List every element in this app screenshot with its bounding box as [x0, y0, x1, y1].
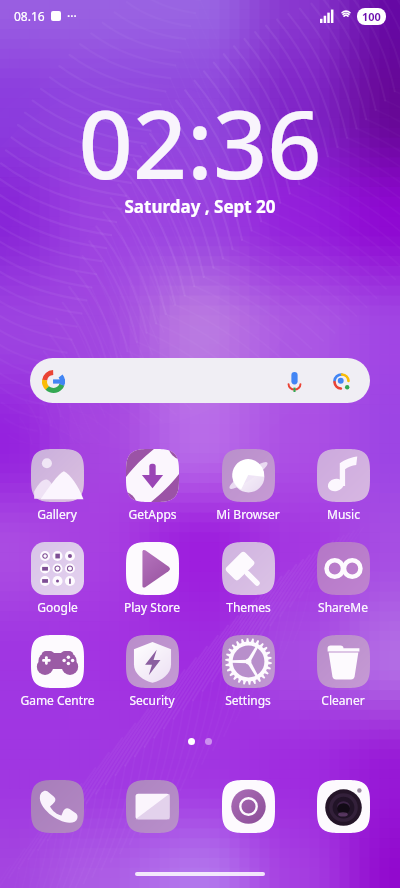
button[interactable]: Cleaner — [298, 635, 388, 708]
button[interactable]: Gallery — [12, 449, 102, 522]
button[interactable]: Phone — [12, 780, 102, 833]
staticText: 100 — [362, 9, 381, 24]
staticText: Cleaner — [321, 692, 365, 708]
staticText: Settings — [225, 692, 271, 708]
button[interactable]: Settings — [203, 635, 293, 708]
staticText: Gallery — [37, 506, 77, 522]
button[interactable]: Security — [107, 635, 197, 708]
button[interactable] — [30, 358, 370, 403]
staticText: 02:36 — [0, 77, 400, 206]
button[interactable]: Messages — [107, 780, 197, 833]
staticText: 08.16 — [14, 8, 45, 24]
staticText: Security — [129, 692, 175, 708]
staticText: Game Centre — [20, 692, 95, 708]
staticText: Saturday , Sept 20 — [0, 195, 400, 218]
button[interactable]: ShareMe — [298, 542, 388, 615]
button[interactable]: Chrome — [203, 780, 293, 833]
button[interactable]: Mi Browser — [203, 449, 293, 522]
staticText: Google — [37, 599, 78, 615]
button[interactable]: Themes — [203, 542, 293, 615]
staticText: Themes — [226, 599, 271, 615]
button[interactable]: Google — [12, 542, 102, 615]
staticText: GetApps — [128, 506, 177, 522]
staticText: Mi Browser — [216, 506, 280, 522]
staticText: ··· — [67, 8, 77, 24]
button[interactable]: GetApps — [107, 449, 197, 522]
button[interactable]: Music — [298, 449, 388, 522]
button[interactable]: Play Store — [107, 542, 197, 615]
staticText: Play Store — [124, 599, 180, 615]
staticText: Music — [327, 506, 360, 522]
staticText: ShareMe — [318, 599, 368, 615]
button[interactable]: Camera — [298, 780, 388, 833]
button[interactable]: Game Centre — [12, 635, 102, 708]
